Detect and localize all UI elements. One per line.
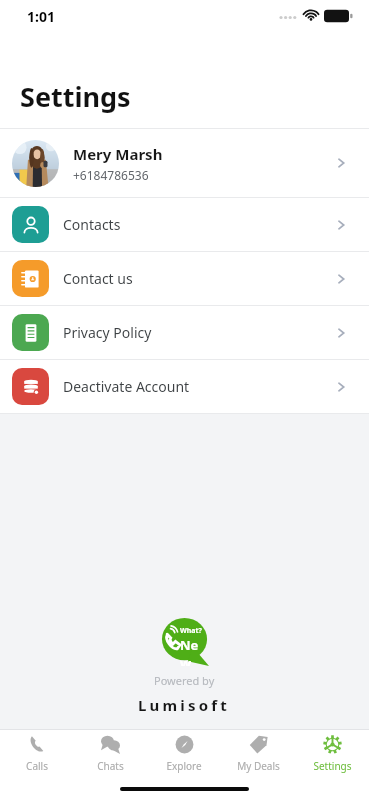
staticText: Calls <box>26 759 48 773</box>
staticText: +6184786536 <box>73 167 149 183</box>
staticText: Lumisoft <box>138 695 231 715</box>
other: Settings <box>323 735 342 754</box>
button[interactable]: Privacy Policy <box>0 306 369 359</box>
button[interactable]: Mery Marsh <box>0 129 369 197</box>
button[interactable]: My Deals <box>221 735 295 773</box>
button[interactable]: Deactivate Account <box>0 360 369 413</box>
staticText: Settings <box>313 759 352 773</box>
button[interactable]: Calls <box>0 735 73 773</box>
staticText: Contact us <box>63 269 333 288</box>
other: Chats <box>101 735 120 754</box>
staticText: What? <box>180 626 202 636</box>
staticText: Explore <box>166 759 202 773</box>
button[interactable]: Explore <box>147 735 221 773</box>
staticText: New <box>180 636 209 666</box>
staticText: Contacts <box>63 215 333 234</box>
button[interactable]: Contacts <box>0 198 369 251</box>
staticText: My Deals <box>237 759 280 773</box>
button[interactable]: Contact us <box>0 252 369 305</box>
staticText: Powered by <box>154 673 215 688</box>
staticText: 1:01 <box>27 7 55 26</box>
other: Calls <box>27 735 46 754</box>
staticText: Deactivate Account <box>63 377 333 396</box>
button[interactable]: Settings <box>295 735 369 773</box>
staticText: Chats <box>97 759 124 773</box>
staticText: Settings <box>20 78 131 115</box>
other: Explore <box>175 735 194 754</box>
other: My Deals <box>249 735 268 754</box>
button[interactable]: Chats <box>73 735 147 773</box>
staticText: Privacy Policy <box>63 323 333 342</box>
staticText: Mery Marsh <box>73 144 163 164</box>
